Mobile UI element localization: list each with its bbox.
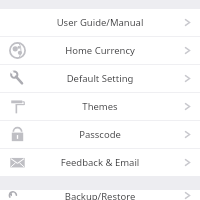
button[interactable]: Home Currency bbox=[0, 37, 200, 64]
button[interactable]: Default Setting bbox=[0, 65, 200, 92]
other: Open Home Currency bbox=[183, 46, 192, 55]
staticText: Feedback & Email bbox=[0, 156, 200, 169]
button[interactable]: Backup/Restore bbox=[0, 190, 200, 200]
staticText: Passcode bbox=[0, 128, 200, 141]
other: Open Passcode bbox=[183, 130, 192, 139]
staticText: User Guide/Manual bbox=[0, 16, 200, 29]
staticText: Themes bbox=[0, 100, 200, 113]
staticText: Backup/Restore bbox=[0, 190, 200, 200]
button[interactable]: Themes bbox=[0, 93, 200, 120]
other: Open Themes bbox=[183, 102, 192, 111]
staticText: Default Setting bbox=[0, 72, 200, 85]
button[interactable]: Passcode bbox=[0, 121, 200, 148]
staticText: Home Currency bbox=[0, 44, 200, 57]
other: Open Feedback & Email bbox=[183, 158, 192, 167]
button[interactable]: Feedback & Email bbox=[0, 149, 200, 176]
other: Open User Guide/Manual bbox=[183, 18, 192, 27]
other: Open Backup/Restore bbox=[183, 191, 192, 200]
button[interactable]: User Guide/Manual bbox=[0, 9, 200, 36]
other: Open Default Setting bbox=[183, 74, 192, 83]
